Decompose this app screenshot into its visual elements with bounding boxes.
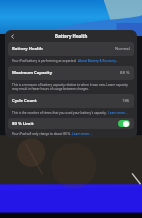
staticText: Cycle Count — [12, 98, 122, 104]
button[interactable]: Back — [8, 32, 17, 41]
button[interactable]: Learn more... — [72, 132, 92, 136]
staticText: Normal — [115, 46, 130, 52]
button[interactable]: Maximum Capacity — [8, 67, 134, 79]
staticText: Your iPad battery is performing as expec… — [12, 59, 77, 63]
other: 80 percent limit toggle, on — [118, 120, 130, 127]
staticText: 80 % Limit — [12, 121, 118, 127]
button[interactable]: Cycle Count — [8, 95, 134, 107]
staticText: Battery Health — [55, 33, 88, 39]
button[interactable]: Battery Health — [8, 43, 134, 55]
button[interactable]: Learn more... — [108, 111, 128, 115]
staticText: Battery Health — [12, 46, 115, 52]
staticText: This is the number of times that you use… — [12, 111, 107, 115]
staticText: 88 % — [120, 70, 130, 76]
button[interactable]: 80 % Limit — [8, 118, 134, 129]
staticText: Maximum Capacity — [12, 70, 120, 76]
staticText: 186 — [122, 98, 130, 104]
button[interactable]: About Battery & Recovery... — [78, 59, 119, 63]
staticText: This is a measure of battery capacity re… — [12, 83, 130, 91]
staticText: Your iPad will only charge to about 80 %… — [12, 132, 71, 136]
